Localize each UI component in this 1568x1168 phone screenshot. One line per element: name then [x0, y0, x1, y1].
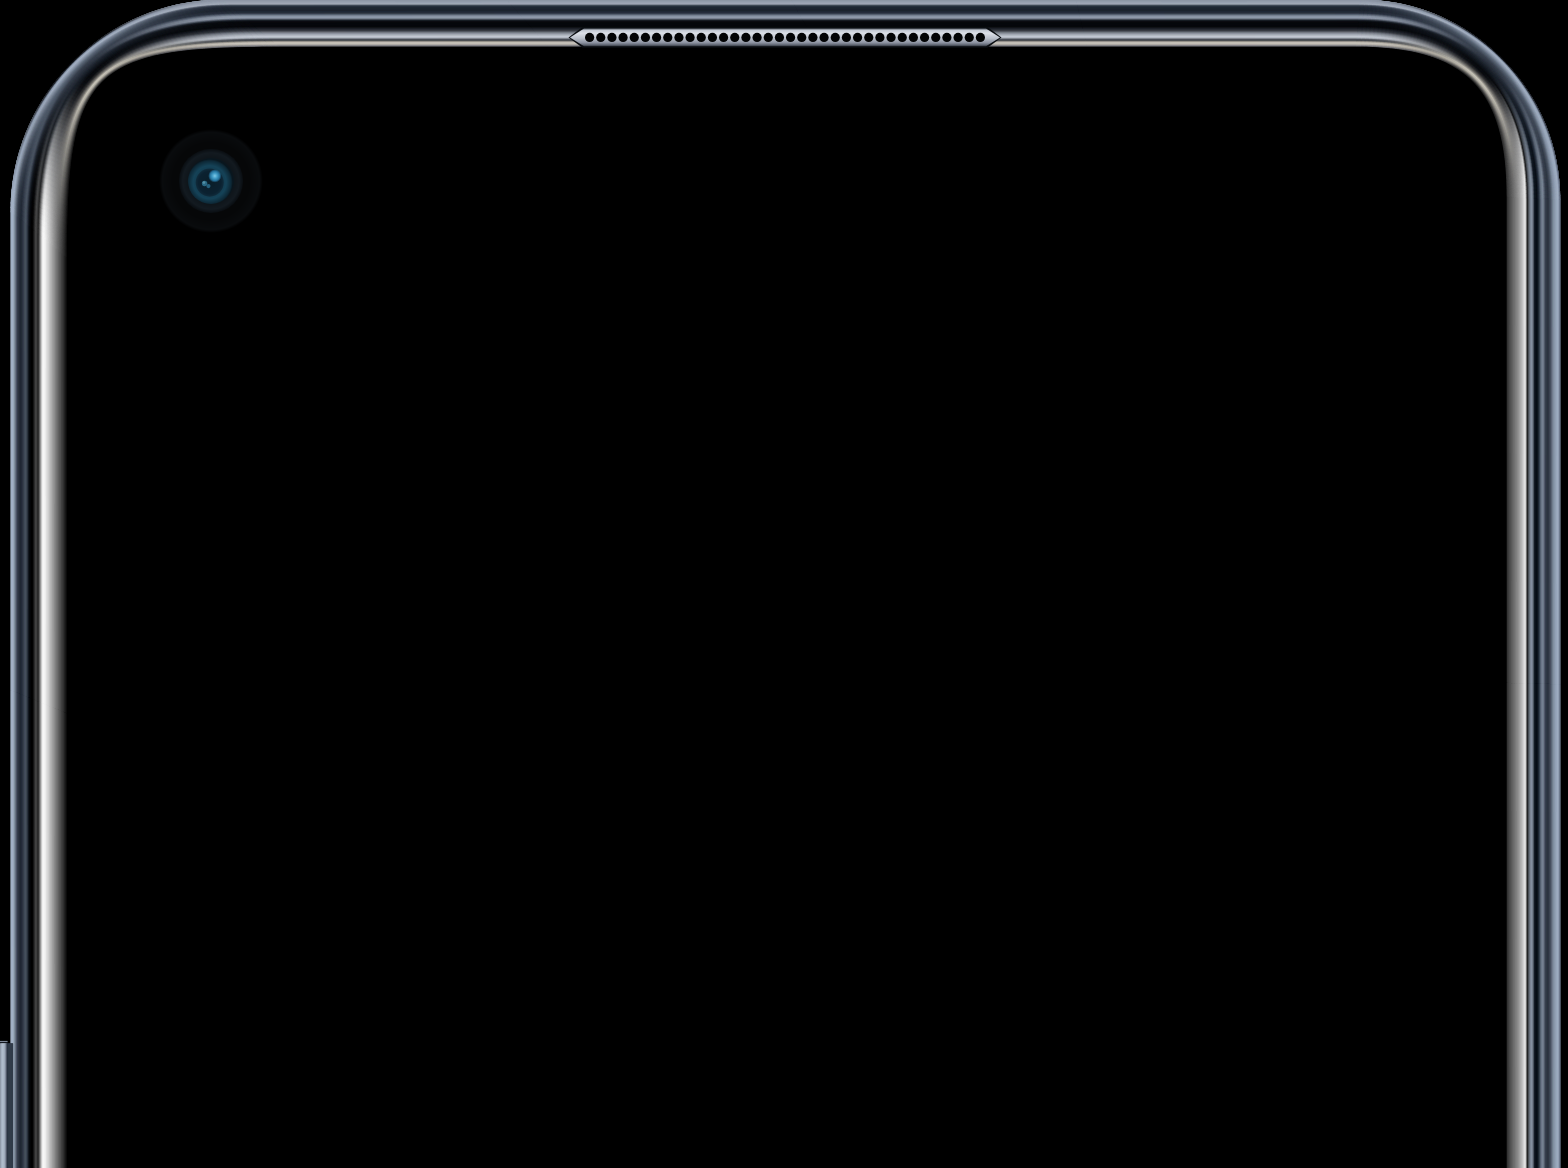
button[interactable]: Earpiece speaker: [571, 27, 999, 48]
button[interactable]: Power button: [0, 1043, 13, 1168]
button[interactable]: Phone display: [66, 47, 1506, 1168]
button[interactable]: Front camera: [179, 149, 243, 213]
